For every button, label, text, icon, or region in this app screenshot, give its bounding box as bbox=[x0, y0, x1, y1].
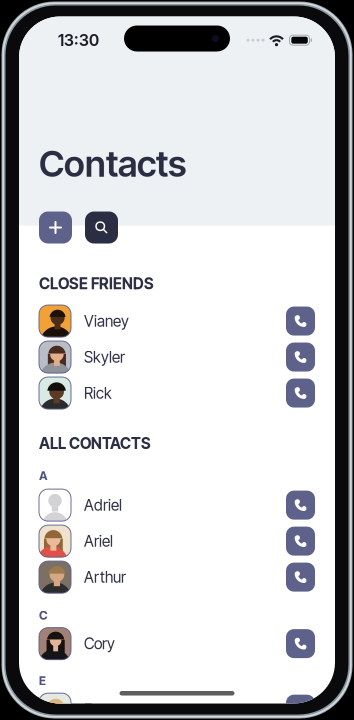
staticText: ALL CONTACTS bbox=[39, 434, 151, 453]
staticText: Rick bbox=[84, 384, 112, 402]
button[interactable]: Call Cory bbox=[286, 629, 315, 658]
staticText: Skyler bbox=[84, 348, 125, 366]
button[interactable]: Call Arthur bbox=[286, 563, 315, 592]
button[interactable]: Call Adriel bbox=[286, 491, 315, 520]
staticText: Eva bbox=[84, 700, 108, 718]
button[interactable]: Call Vianey bbox=[286, 307, 315, 336]
staticText: Arthur bbox=[84, 568, 126, 586]
staticText: Ariel bbox=[84, 532, 113, 550]
button[interactable]: Rick bbox=[39, 377, 315, 409]
button[interactable]: Cory bbox=[39, 628, 315, 660]
staticText: E bbox=[39, 674, 46, 688]
staticText: C bbox=[39, 608, 48, 623]
button[interactable]: Ariel bbox=[39, 525, 315, 557]
staticText: Contacts bbox=[39, 142, 186, 185]
button[interactable]: Adriel bbox=[39, 489, 315, 521]
staticText: 13:30 bbox=[58, 30, 99, 50]
staticText: Cory bbox=[84, 634, 115, 653]
staticText: CLOSE FRIENDS bbox=[39, 274, 154, 293]
button[interactable]: Arthur bbox=[39, 561, 315, 593]
button[interactable]: Skyler bbox=[39, 341, 315, 373]
button[interactable]: Vianey bbox=[39, 305, 315, 337]
button[interactable]: Search bbox=[85, 211, 118, 243]
staticText: A bbox=[39, 469, 48, 483]
button[interactable]: Call Ariel bbox=[286, 527, 315, 556]
button[interactable]: Add contact bbox=[39, 211, 72, 243]
button[interactable]: Call Rick bbox=[286, 379, 315, 408]
button[interactable]: Call Eva bbox=[286, 695, 315, 720]
staticText: Adriel bbox=[84, 496, 122, 514]
button[interactable]: Call Skyler bbox=[286, 343, 315, 372]
button[interactable]: Eva bbox=[39, 693, 315, 720]
staticText: Vianey bbox=[84, 312, 129, 330]
